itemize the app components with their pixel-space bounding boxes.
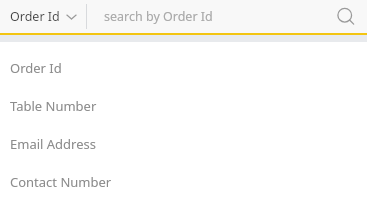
staticText: Table Number: [10, 97, 97, 115]
button[interactable]: Order Id: [0, 0, 86, 33]
button[interactable]: Search: [325, 0, 367, 33]
staticText: Email Address: [10, 135, 96, 153]
button[interactable]: Order Id: [0, 49, 367, 87]
button[interactable]: search by Order Id: [87, 0, 325, 33]
staticText: Order Id: [10, 59, 62, 77]
button[interactable]: Contact Number: [0, 163, 367, 201]
button[interactable]: Table Number: [0, 87, 367, 125]
staticText: Order Id: [10, 8, 60, 25]
staticText: search by Order Id: [104, 8, 213, 25]
staticText: Contact Number: [10, 173, 112, 191]
button[interactable]: Email Address: [0, 125, 367, 163]
